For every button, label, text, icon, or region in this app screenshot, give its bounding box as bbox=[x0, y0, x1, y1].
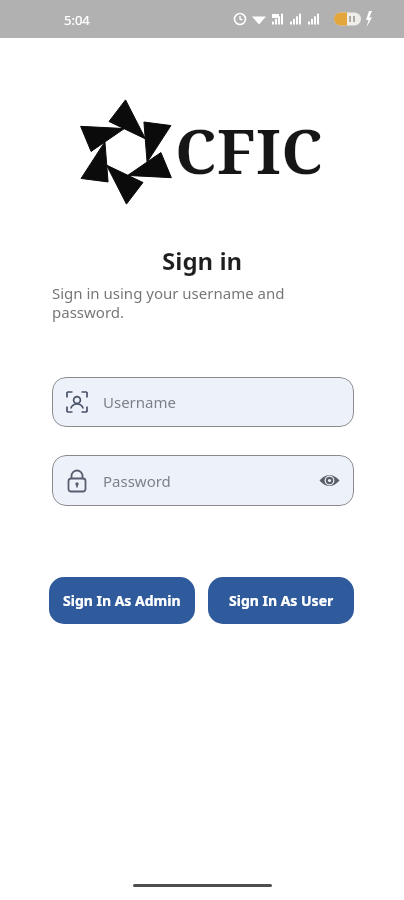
staticText: Password bbox=[103, 471, 171, 491]
staticText: 5:04 bbox=[64, 11, 90, 29]
staticText: Sign In As Admin bbox=[63, 591, 181, 610]
staticText: Sign in bbox=[162, 244, 243, 277]
staticText: Username bbox=[103, 392, 176, 412]
button[interactable]: Username bbox=[52, 377, 354, 427]
button[interactable] bbox=[319, 473, 340, 488]
staticText: Sign in using your username and password… bbox=[52, 283, 285, 322]
staticText: CFIC bbox=[175, 108, 324, 192]
button[interactable]: Sign In As Admin bbox=[49, 577, 195, 624]
staticText: Sign In As User bbox=[229, 591, 334, 610]
button[interactable]: Sign In As User bbox=[208, 577, 354, 624]
button[interactable]: Password bbox=[52, 455, 354, 506]
